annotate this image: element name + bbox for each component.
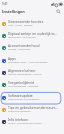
button[interactable]: Geavanceerde functies xyxy=(2,18,59,30)
staticText: Status · Juridische informatie xyxy=(8,121,42,124)
button[interactable]: Algemeen beheer xyxy=(2,67,59,79)
staticText: Instellingen xyxy=(2,9,25,14)
staticText: Standaard-apps · App-instellingen xyxy=(8,60,48,63)
staticText: Algemeen beheer xyxy=(8,68,36,72)
staticText: Voorleesfunctie · TalkBack xyxy=(8,84,39,87)
button[interactable]: Digitaal welzijn en ouderlijk toezicht xyxy=(2,30,59,42)
staticText: Info telefoon xyxy=(8,117,29,121)
staticText: Accountsonderhoud xyxy=(8,43,40,47)
button[interactable]: Info telefoon xyxy=(2,116,59,128)
button[interactable]: Apps xyxy=(2,55,59,67)
staticText: Schermtijd · App-timers xyxy=(8,35,36,38)
staticText: Taal en toetsenbord · Datum xyxy=(8,72,42,75)
button[interactable]: Accountsonderhoud xyxy=(2,42,59,54)
staticText: Geavanceerde functies xyxy=(8,19,44,23)
button[interactable]: Toegankelijkheid xyxy=(2,79,59,91)
staticText: Downloaden en installeren xyxy=(8,97,40,100)
staticText: Tips en gebruikersondersteuning xyxy=(8,105,59,109)
staticText: Samsung Members xyxy=(8,109,31,112)
staticText: Softwareupdate xyxy=(8,93,33,97)
staticText: Digitaal welzijn en ouderlijk toezicht xyxy=(8,31,59,35)
staticText: Toegankelijkheid xyxy=(8,80,35,84)
staticText: Opslag · Geheugen xyxy=(8,47,31,50)
staticText: Labs · S Pen · Zijtoets xyxy=(8,23,33,26)
button[interactable]: Search xyxy=(55,8,62,15)
staticText: 9:41 xyxy=(2,2,8,6)
button[interactable]: Tips en gebruikersondersteuning xyxy=(2,104,59,116)
button[interactable]: Softwareupdate xyxy=(2,92,59,104)
staticText: Apps xyxy=(8,56,16,60)
